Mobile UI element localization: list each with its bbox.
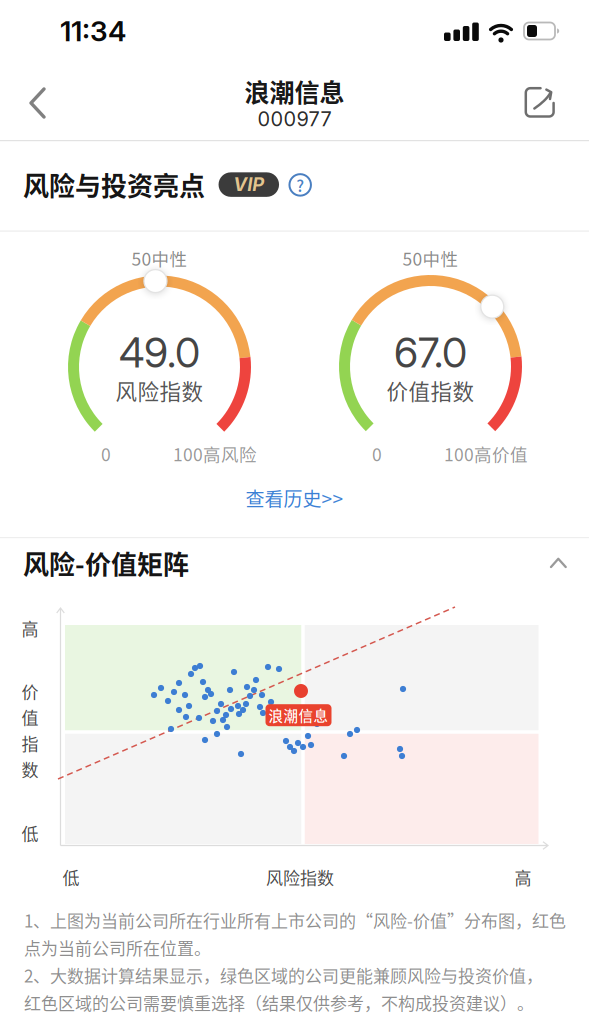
- staticText: 49.0: [119, 328, 200, 377]
- staticText: 0: [101, 441, 111, 466]
- staticText: 价: [21, 679, 38, 703]
- staticText: 低: [62, 865, 79, 889]
- staticText: 50中性: [131, 245, 187, 271]
- staticText: 浪潮信息: [244, 73, 344, 109]
- staticText: 1、上图为当前公司所在行业所有上市公司的“风险-价值”分布图，红色: [24, 908, 566, 932]
- staticText: ?: [296, 173, 304, 196]
- staticText: 67.0: [394, 328, 467, 377]
- staticText: 查看历史>>: [245, 484, 343, 512]
- staticText: 点为当前公司所在位置。: [24, 935, 211, 960]
- button[interactable]: Back: [17, 81, 61, 125]
- staticText: 100高风险: [173, 441, 257, 466]
- button[interactable]: VIP: [219, 172, 279, 197]
- staticText: 2、大数据计算结果显示，绿色区域的公司更能兼顾风险与投资价值，: [24, 963, 543, 987]
- staticText: 风险指数: [115, 375, 203, 406]
- staticText: 浪潮信息: [268, 705, 328, 726]
- button[interactable]: Collapse: [536, 541, 580, 585]
- staticText: 指: [21, 731, 38, 755]
- button[interactable]: 查看历史>>: [245, 484, 343, 512]
- staticText: 000977: [257, 107, 331, 131]
- staticText: 风险指数: [266, 865, 334, 889]
- staticText: 高: [21, 616, 38, 640]
- staticText: 价值指数: [386, 375, 474, 406]
- staticText: 50中性: [402, 245, 458, 271]
- staticText: 0: [372, 441, 382, 466]
- staticText: 11:34: [60, 14, 126, 48]
- staticText: 风险-价值矩阵: [23, 544, 189, 582]
- staticText: 值: [21, 705, 38, 729]
- staticText: 100高价值: [444, 441, 528, 466]
- staticText: 数: [21, 757, 38, 781]
- staticText: 高: [514, 865, 531, 889]
- staticText: 低: [21, 821, 38, 845]
- button[interactable]: Help: [285, 170, 315, 200]
- staticText: 红色区域的公司需要慎重选择（结果仅供参考，不构成投资建议）。: [24, 990, 534, 1015]
- staticText: VIP: [233, 173, 264, 196]
- staticText: 风险与投资亮点: [23, 166, 205, 203]
- button[interactable]: Share: [517, 80, 561, 124]
